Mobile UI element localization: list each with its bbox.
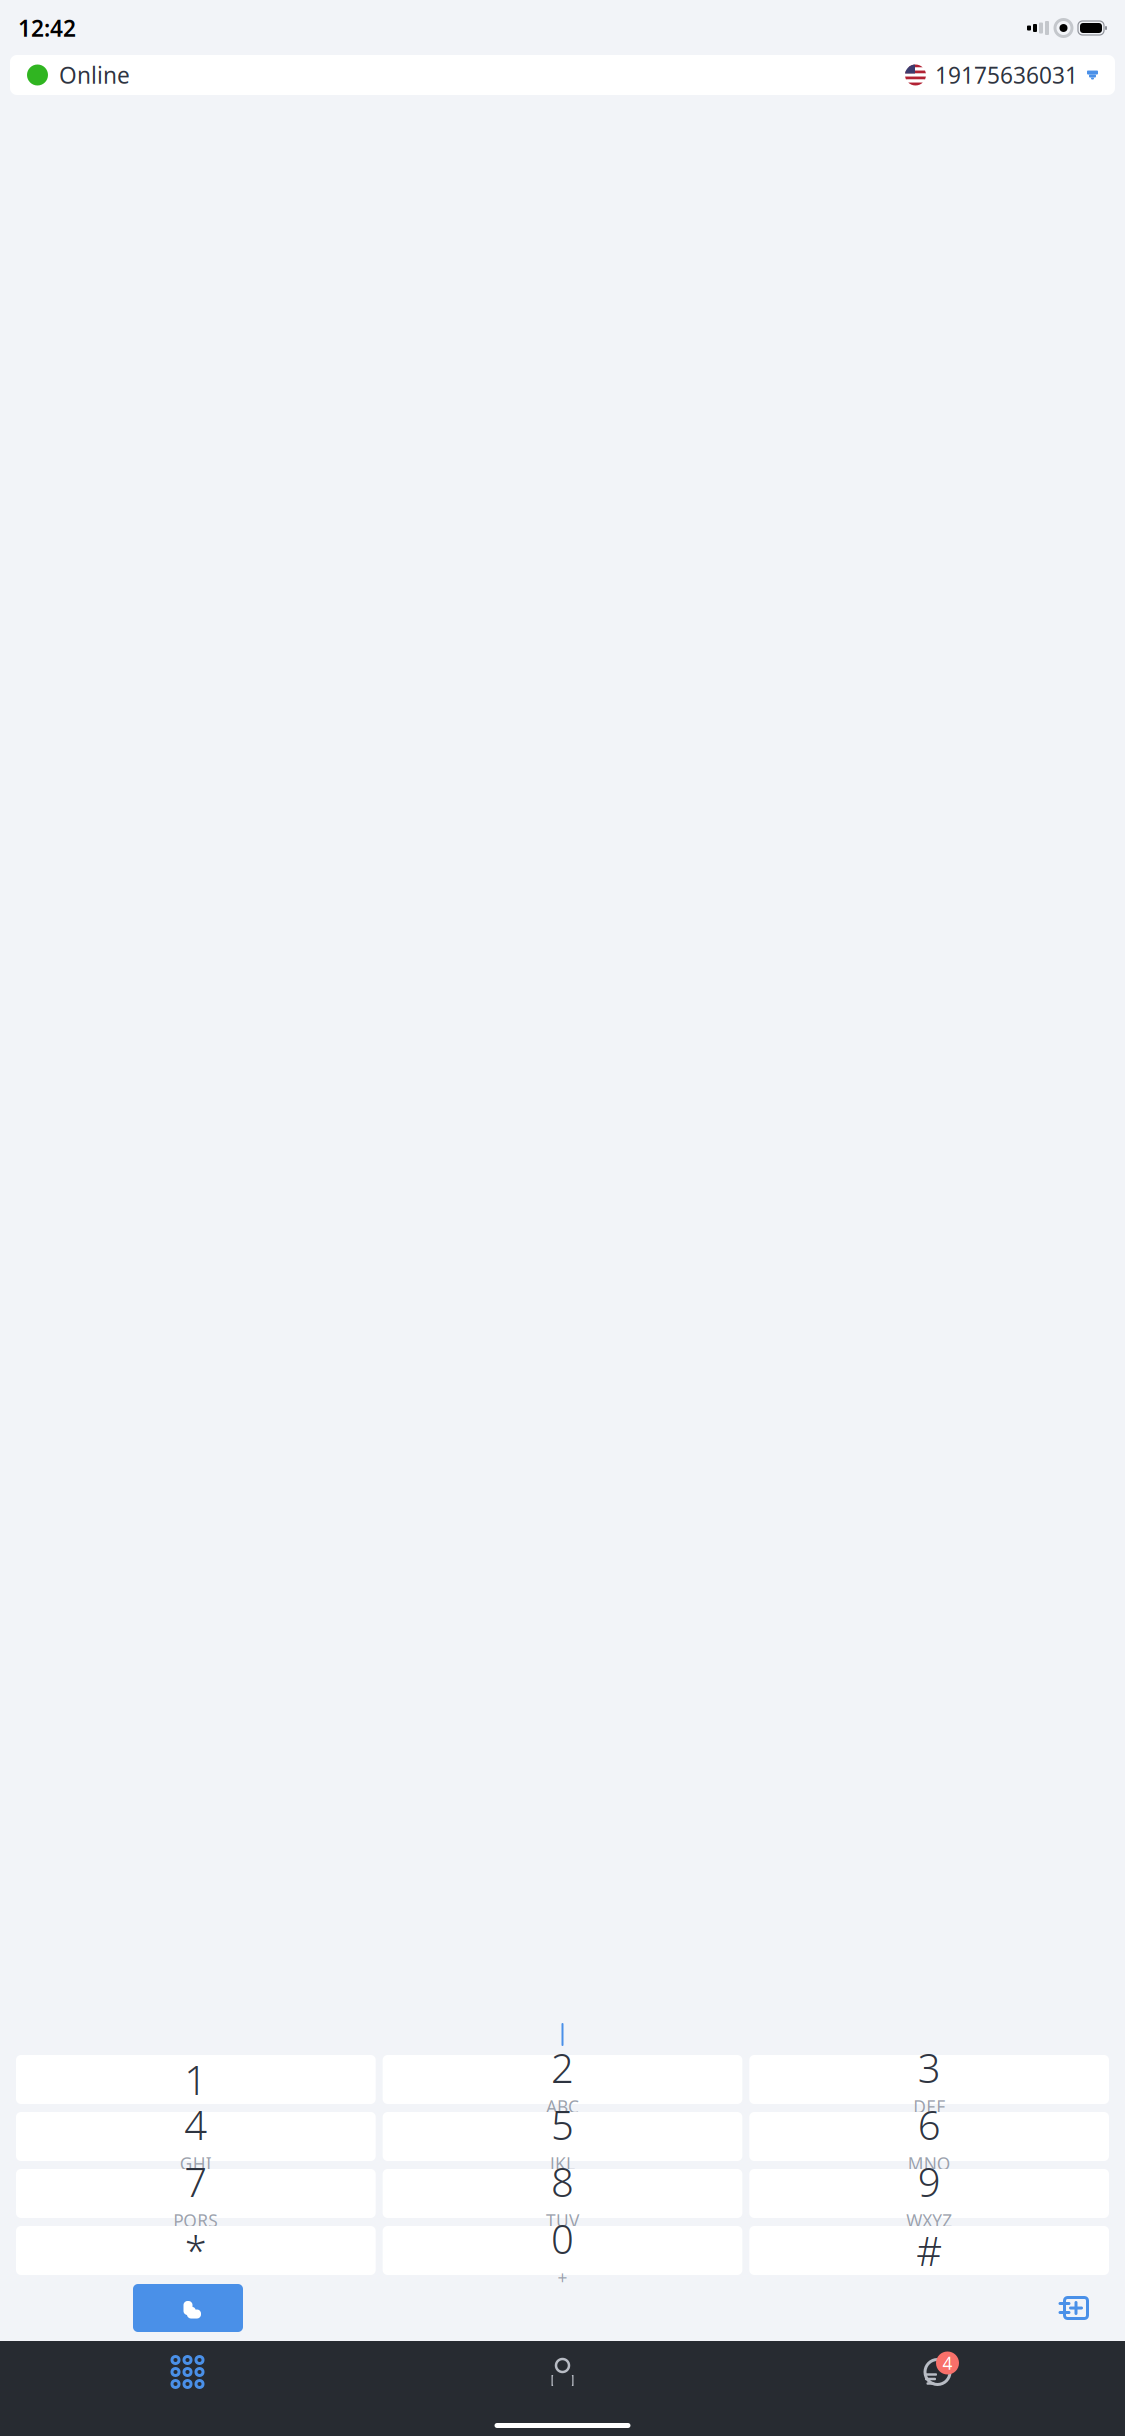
staticText: # — [916, 2224, 942, 2277]
button[interactable]: Calls — [750, 2341, 1125, 2403]
button[interactable]: 8 — [383, 2169, 742, 2218]
staticText: 12:42 — [18, 13, 76, 43]
button[interactable]: 6 — [749, 2112, 1109, 2161]
button[interactable]: 1 — [16, 2055, 376, 2104]
staticText: JKL — [550, 2152, 575, 2175]
button[interactable]: # — [749, 2226, 1109, 2275]
staticText: 1 — [184, 2053, 207, 2106]
staticText: 5 — [551, 2098, 574, 2151]
staticText: 2 — [551, 2041, 574, 2094]
button[interactable]: 3 — [749, 2055, 1109, 2104]
staticText: 4 — [184, 2098, 207, 2151]
button[interactable]: 2 — [383, 2055, 742, 2104]
button[interactable]: Delete — [1037, 2284, 1109, 2332]
staticText: WXYZ — [906, 2209, 952, 2232]
staticText: TUV — [546, 2209, 579, 2232]
button[interactable]: 7 — [16, 2169, 376, 2218]
staticText: ABC — [546, 2095, 579, 2118]
staticText: 6 — [918, 2098, 941, 2151]
staticText: * — [185, 2224, 207, 2277]
staticText: 0 — [551, 2212, 574, 2265]
staticText: 9 — [918, 2155, 941, 2208]
staticText: PQRS — [173, 2209, 218, 2232]
button[interactable]: Call — [133, 2284, 243, 2332]
staticText: 19175636031 — [935, 60, 1078, 90]
button[interactable]: 4 — [16, 2112, 376, 2161]
staticText: MNO — [908, 2152, 951, 2175]
staticText: 8 — [551, 2155, 574, 2208]
staticText: 3 — [918, 2041, 941, 2094]
button[interactable]: 9 — [749, 2169, 1109, 2218]
button[interactable]: * — [16, 2226, 376, 2275]
button[interactable]: 19175636031 — [905, 54, 1098, 96]
button[interactable]: Keypad — [0, 2341, 375, 2403]
staticText: Online — [59, 60, 130, 90]
staticText: DEF — [913, 2095, 945, 2118]
button[interactable]: 5 — [383, 2112, 742, 2161]
button[interactable]: 0 — [383, 2226, 742, 2275]
staticText: + — [557, 2266, 567, 2289]
staticText: 4 — [942, 2351, 952, 2374]
button[interactable]: Online — [27, 54, 130, 96]
staticText: GHI — [180, 2152, 212, 2175]
staticText: 7 — [184, 2155, 207, 2208]
button[interactable]: Contacts — [375, 2341, 750, 2403]
